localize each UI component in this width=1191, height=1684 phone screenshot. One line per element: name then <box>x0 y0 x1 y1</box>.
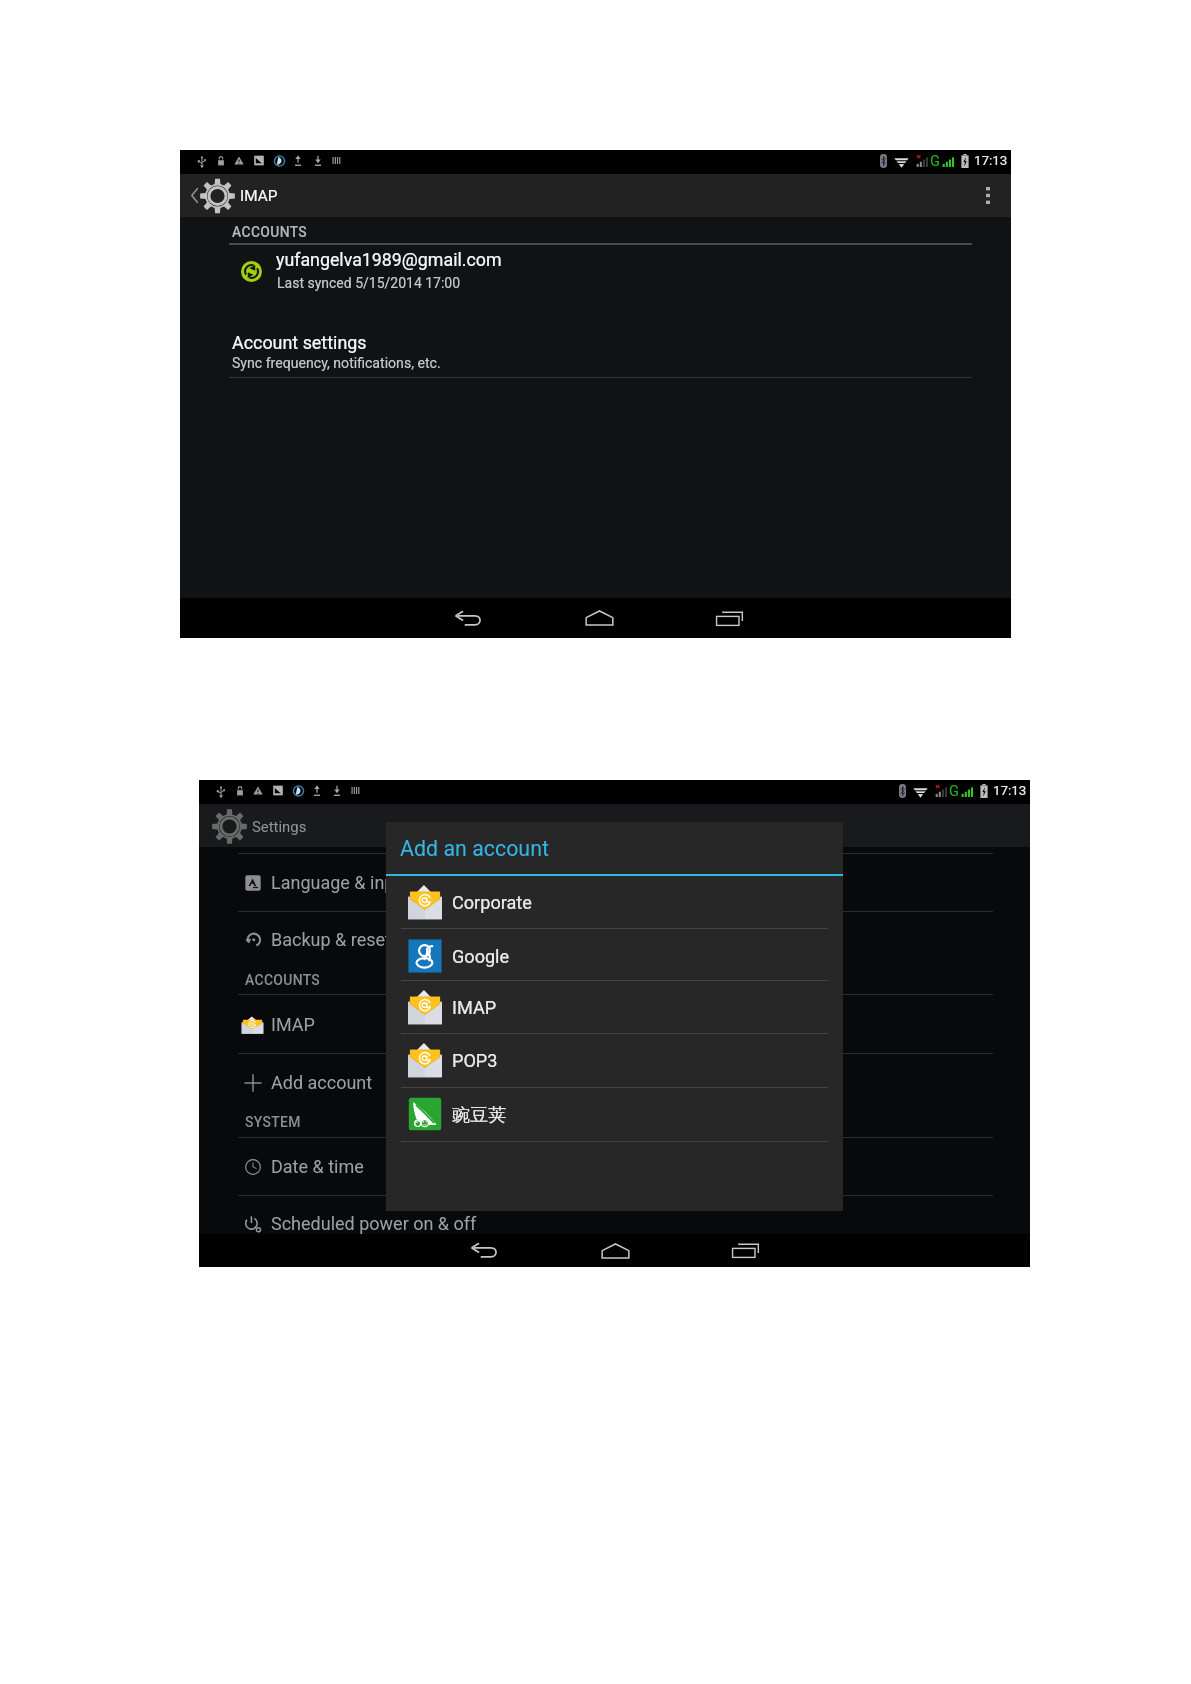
staticText: ACCOUNTS <box>245 972 321 988</box>
staticText: Scheduled power on & off <box>271 1213 477 1234</box>
button[interactable]: Google <box>386 936 843 976</box>
staticText: IMAP <box>452 997 497 1018</box>
button[interactable]: Corporate <box>386 882 843 922</box>
button[interactable]: yufangelva1989@gmail.com <box>180 248 1011 298</box>
button[interactable]: Home <box>587 1234 643 1267</box>
button[interactable]: Backup & reset <box>199 924 1030 956</box>
staticText: Backup & reset <box>271 929 391 950</box>
button[interactable]: Recent apps <box>718 1234 774 1267</box>
staticText: 17:13 <box>993 783 1027 799</box>
button[interactable]: Recent apps <box>702 598 758 638</box>
staticText: 豌豆荚 <box>452 1104 507 1127</box>
staticText: ACCOUNTS <box>232 224 308 240</box>
button[interactable]: POP3 <box>386 1040 843 1080</box>
staticText: 17:13 <box>974 153 1008 169</box>
staticText: Last synced 5/15/2014 17:00 <box>277 275 461 291</box>
staticText: G <box>930 152 940 169</box>
button[interactable]: Language & input <box>199 867 1030 899</box>
staticText: yufangelva1989@gmail.com <box>276 249 502 270</box>
button[interactable]: Date & time <box>199 1151 1030 1183</box>
staticText: SYSTEM <box>245 1114 301 1130</box>
staticText: Language & input <box>271 872 411 893</box>
button[interactable]: Back <box>456 1234 512 1267</box>
staticText: Corporate <box>452 892 532 913</box>
staticText: Add an account <box>400 836 549 861</box>
button[interactable]: Add account <box>199 1067 1030 1099</box>
button[interactable]: IMAP <box>386 987 843 1027</box>
button[interactable]: 豌豆荚 <box>386 1094 843 1134</box>
button[interactable]: Home <box>571 598 627 638</box>
staticText: G <box>949 782 959 799</box>
button[interactable]: Scheduled power on & off <box>199 1208 1030 1240</box>
button[interactable]: Navigate up <box>180 174 244 217</box>
staticText: Settings <box>252 818 307 835</box>
button[interactable]: More options <box>965 174 1011 217</box>
staticText: Sync frequency, notifications, etc. <box>232 355 441 372</box>
button[interactable]: IMAP <box>199 1009 1030 1041</box>
staticText: POP3 <box>452 1050 498 1071</box>
staticText: Google <box>452 946 510 967</box>
button[interactable]: Account settings <box>180 330 1011 378</box>
button[interactable]: Back <box>440 598 496 638</box>
staticText: IMAP <box>271 1014 315 1035</box>
button[interactable]: Settings <box>199 804 319 847</box>
staticText: Add account <box>271 1072 373 1093</box>
staticText: IMAP <box>240 187 278 205</box>
staticText: Account settings <box>232 332 367 353</box>
staticText: Date & time <box>271 1156 364 1177</box>
